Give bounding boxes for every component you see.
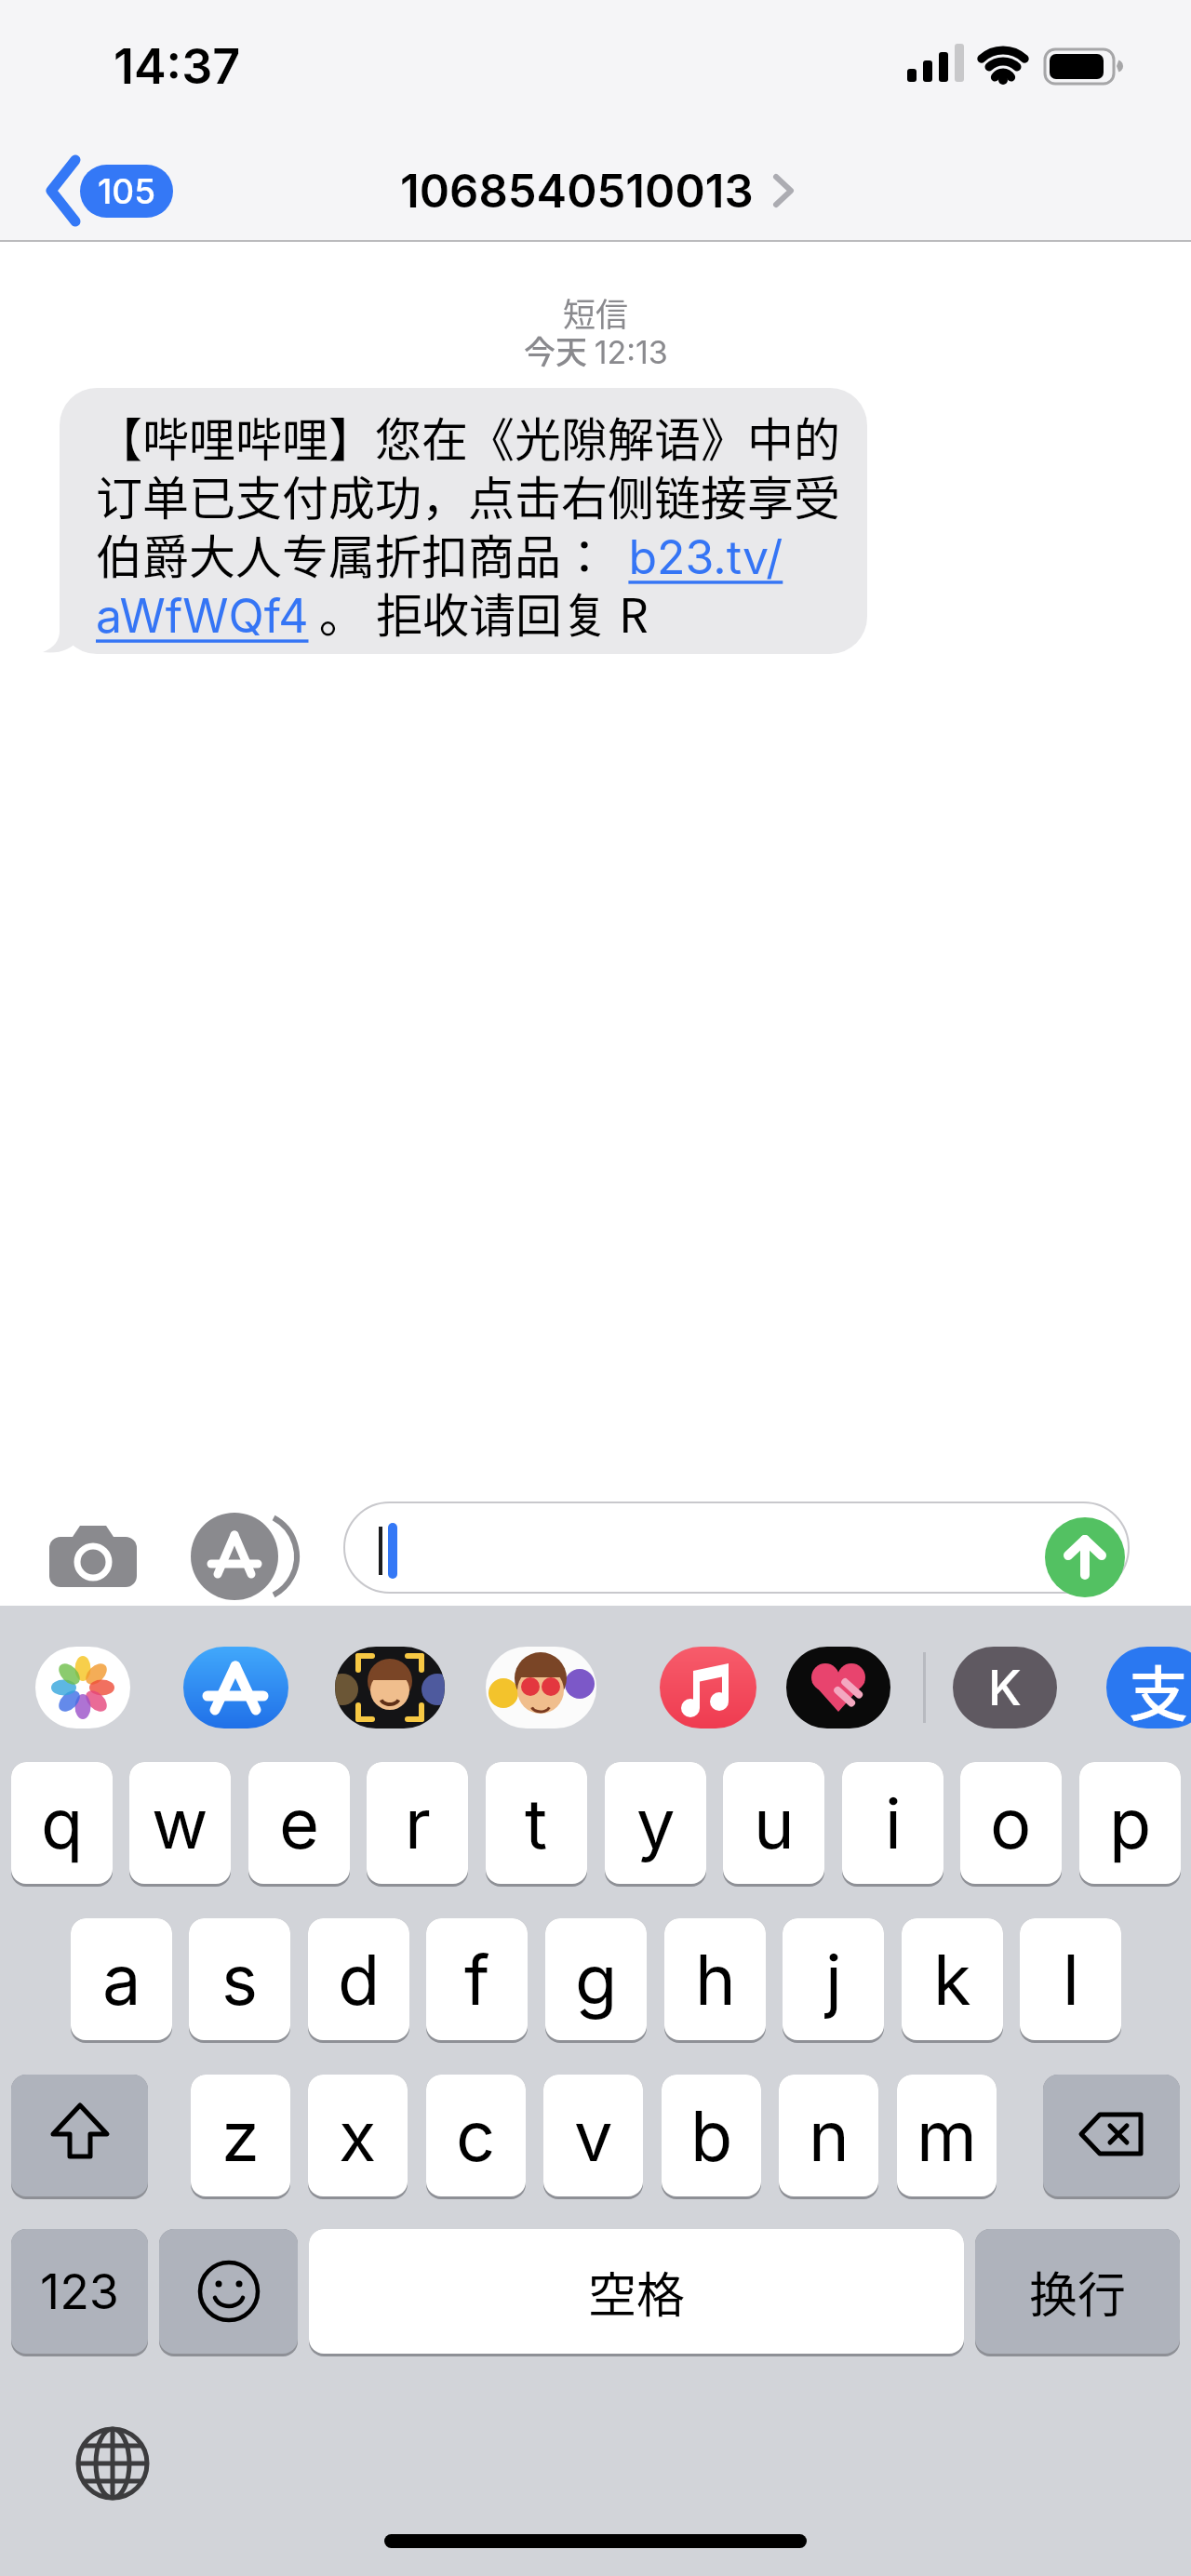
staticText: r: [405, 1782, 431, 1865]
staticText: n: [809, 2094, 850, 2178]
button[interactable]: [159, 2229, 298, 2356]
button[interactable]: [343, 1502, 1130, 1594]
staticText: i: [885, 1782, 902, 1865]
button[interactable]: n: [779, 2075, 878, 2199]
staticText: d: [338, 1938, 381, 2022]
staticText: 123: [40, 2262, 119, 2321]
staticText: 105: [98, 170, 156, 212]
staticText: h: [695, 1938, 736, 2022]
staticText: f: [464, 1938, 490, 2022]
staticText: 【哔哩哔哩】您在《光隙解语》中的 订单已支付成功，点击右侧链接享受 伯爵大人专属…: [96, 403, 840, 647]
button[interactable]: l: [1020, 1918, 1121, 2043]
staticText: 换行: [1029, 2257, 1127, 2327]
button[interactable]: e: [248, 1762, 350, 1887]
button[interactable]: 支: [1106, 1647, 1191, 1728]
staticText: p: [1109, 1782, 1152, 1865]
button[interactable]: [660, 1647, 756, 1728]
button[interactable]: [1045, 1517, 1125, 1597]
button[interactable]: j: [783, 1918, 884, 2043]
staticText: e: [279, 1782, 320, 1865]
button[interactable]: 123: [11, 2229, 148, 2356]
button[interactable]: h: [664, 1918, 766, 2043]
button[interactable]: [11, 2075, 148, 2199]
staticText: K: [988, 1659, 1022, 1717]
button[interactable]: [183, 1647, 288, 1728]
button[interactable]: [37, 149, 93, 233]
staticText: t: [525, 1782, 548, 1865]
button[interactable]: [75, 2426, 150, 2501]
button[interactable]: 空格: [309, 2229, 964, 2356]
button[interactable]: k: [902, 1918, 1003, 2043]
staticText: u: [754, 1782, 795, 1865]
button[interactable]: d: [308, 1918, 409, 2043]
button[interactable]: t: [486, 1762, 587, 1887]
button[interactable]: r: [367, 1762, 468, 1887]
staticText: q: [41, 1782, 84, 1865]
button[interactable]: 换行: [975, 2229, 1180, 2356]
button[interactable]: i: [842, 1762, 943, 1887]
button[interactable]: 105: [80, 165, 173, 218]
staticText: g: [575, 1938, 618, 2022]
button[interactable]: c: [426, 2075, 526, 2199]
button[interactable]: f: [426, 1918, 528, 2043]
staticText: 支: [1129, 1647, 1188, 1728]
button[interactable]: y: [605, 1762, 706, 1887]
button[interactable]: x: [308, 2075, 408, 2199]
staticText: 短信: [563, 288, 629, 329]
staticText: 今天 12:13: [524, 327, 668, 368]
button[interactable]: p: [1079, 1762, 1181, 1887]
staticText: v: [574, 2094, 613, 2178]
button[interactable]: q: [11, 1762, 113, 1887]
staticText: s: [221, 1938, 259, 2022]
button[interactable]: v: [543, 2075, 643, 2199]
staticText: z: [221, 2094, 260, 2178]
button[interactable]: o: [960, 1762, 1062, 1887]
button[interactable]: [1043, 2075, 1180, 2199]
button[interactable]: [45, 1521, 142, 1595]
staticText: 14:37: [114, 37, 241, 93]
staticText: o: [990, 1782, 1032, 1865]
staticText: 空格: [588, 2257, 686, 2327]
button[interactable]: K: [953, 1647, 1057, 1728]
staticText: w: [152, 1782, 208, 1865]
button[interactable]: s: [189, 1918, 290, 2043]
staticText: l: [1063, 1938, 1079, 2022]
staticText: a: [102, 1938, 141, 2022]
button[interactable]: [335, 1647, 445, 1728]
button[interactable]: u: [723, 1762, 824, 1887]
button[interactable]: w: [129, 1762, 231, 1887]
staticText: x: [339, 2094, 377, 2178]
button[interactable]: [486, 1647, 596, 1728]
staticText: k: [933, 1938, 971, 2022]
button[interactable]: [786, 1647, 890, 1728]
staticText: j: [825, 1938, 842, 2022]
button[interactable]: z: [191, 2075, 290, 2199]
staticText: b: [690, 2094, 733, 2178]
staticText: y: [636, 1782, 676, 1865]
staticText: 1068540510013: [400, 164, 754, 219]
staticText: m: [917, 2094, 977, 2178]
button[interactable]: a: [71, 1918, 172, 2043]
button[interactable]: b: [662, 2075, 761, 2199]
button[interactable]: [191, 1513, 298, 1601]
button[interactable]: m: [897, 2075, 997, 2199]
button[interactable]: g: [545, 1918, 647, 2043]
button[interactable]: [35, 1647, 130, 1728]
staticText: c: [456, 2094, 496, 2178]
